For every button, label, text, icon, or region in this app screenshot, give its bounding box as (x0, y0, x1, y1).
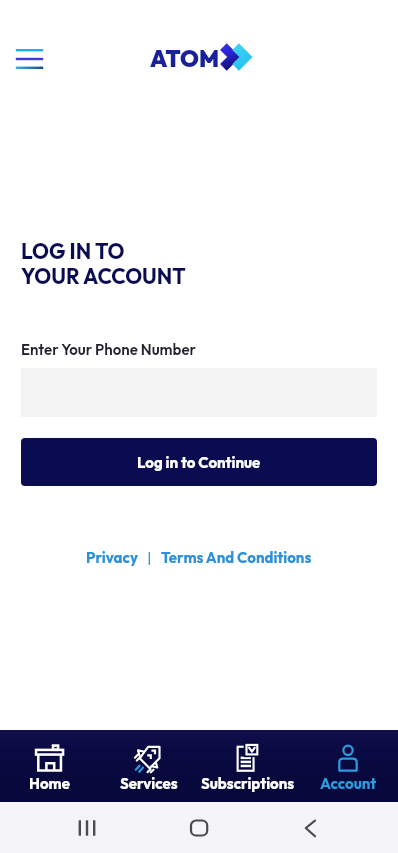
button[interactable]: Terms And Conditions (161, 548, 312, 567)
staticText: Enter Your Phone Number (21, 340, 197, 359)
button[interactable]: Log in to Continue (21, 438, 377, 486)
button[interactable]: Subscriptions (198, 731, 298, 802)
staticText: | (138, 548, 161, 567)
staticText: Log in to Continue (137, 453, 261, 472)
button[interactable]: Home (0, 731, 99, 802)
staticText: Services (120, 774, 178, 793)
button[interactable]: Services (99, 731, 198, 802)
button[interactable]: Privacy (86, 548, 138, 567)
staticText: Home (29, 774, 70, 793)
button[interactable]: Menu (7, 37, 51, 81)
staticText: ATOM (150, 44, 219, 73)
button[interactable]: Account (298, 731, 398, 802)
staticText: Account (320, 774, 377, 793)
staticText: LOG IN TO YOUR ACCOUNT (21, 238, 186, 289)
staticText: Subscriptions (201, 774, 295, 793)
